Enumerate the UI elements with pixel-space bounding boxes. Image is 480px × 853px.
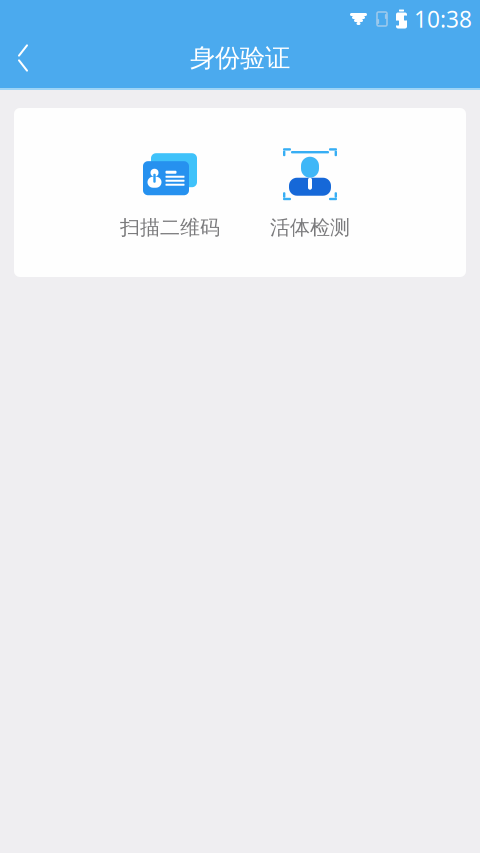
button[interactable]: 扫描二维码 [100,142,240,242]
staticText: 身份验证 [190,42,290,73]
button[interactable]: Back [0,33,46,83]
button[interactable]: 活体检测 [240,142,380,242]
staticText: 10:38 [414,4,472,34]
staticText: 扫描二维码 [120,215,220,240]
staticText: 活体检测 [270,215,350,240]
